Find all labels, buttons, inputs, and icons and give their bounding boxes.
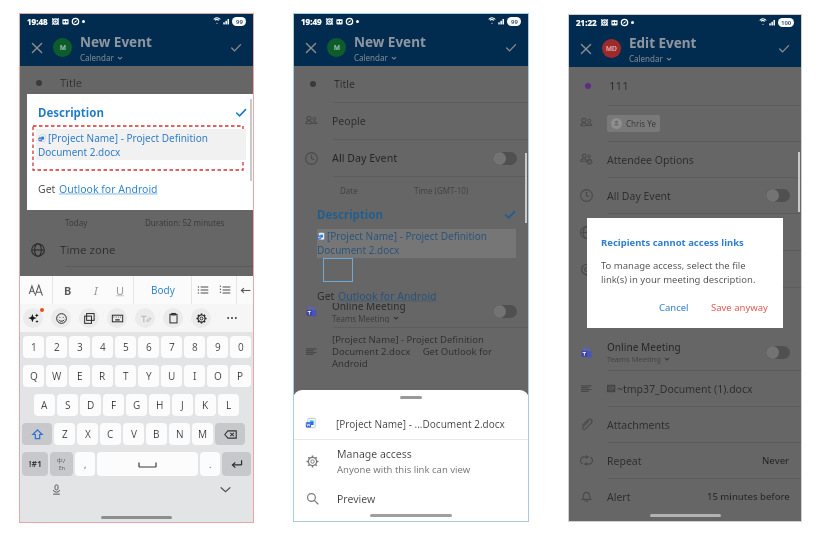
button[interactable]: Attachments [568, 407, 802, 442]
button[interactable]: Space [97, 452, 198, 476]
staticText: 4 [100, 340, 106, 354]
staticText: 111 [609, 78, 629, 94]
button[interactable]: Keyboard [107, 308, 127, 328]
button[interactable]: More [222, 308, 242, 328]
button[interactable]: I [83, 276, 108, 304]
button[interactable]: J [172, 394, 193, 416]
button[interactable]: Cancel [653, 297, 695, 318]
button[interactable]: . [200, 452, 220, 476]
staticText: 99 [236, 18, 243, 26]
button[interactable]: V [123, 423, 144, 445]
button[interactable]: 2 [46, 336, 67, 358]
staticText: 2 [54, 340, 60, 354]
button[interactable]: U [108, 276, 133, 304]
button[interactable]: U [161, 365, 182, 387]
button[interactable]: Z [54, 423, 75, 445]
staticText: M [334, 43, 340, 52]
button[interactable]: Close [26, 37, 48, 59]
staticText: Teams Meeting [332, 313, 390, 323]
button[interactable]: Close [575, 38, 597, 60]
staticText: L [226, 398, 232, 412]
button[interactable]: Shift [22, 423, 52, 445]
button[interactable]: Toggle [493, 305, 517, 318]
button[interactable]: , [75, 452, 95, 476]
button[interactable]: T [115, 365, 136, 387]
button[interactable]: Bulleted list [192, 276, 214, 304]
staticText: Manage access [337, 447, 412, 461]
button[interactable]: Toggle [493, 152, 517, 165]
button[interactable]: 1 [23, 336, 44, 358]
button[interactable]: L [218, 394, 239, 416]
button[interactable]: 8 [184, 336, 205, 358]
button[interactable] [568, 214, 802, 250]
button[interactable]: Q [23, 365, 44, 387]
button[interactable]: G [126, 394, 147, 416]
button[interactable]: M [192, 423, 213, 445]
button[interactable]: I [184, 365, 205, 387]
button[interactable]: O [207, 365, 228, 387]
button[interactable]: 0 [230, 336, 251, 358]
button[interactable]: Title [293, 66, 529, 102]
staticText: I [193, 369, 197, 383]
button[interactable]: [Project Name] - ...Document 2.docx [293, 408, 529, 439]
button[interactable]: 5 [115, 336, 136, 358]
button[interactable]: Save anyway [705, 297, 774, 318]
button[interactable]: All Day Event [568, 178, 802, 213]
button[interactable]: 6 [138, 336, 159, 358]
button[interactable]: S [57, 394, 78, 416]
button[interactable]: K [195, 394, 216, 416]
staticText: B [64, 283, 72, 298]
button[interactable]: Y [138, 365, 159, 387]
button[interactable]: 7 [161, 336, 182, 358]
button[interactable]: !#1 [22, 452, 48, 476]
button[interactable]: All Day Event [293, 140, 529, 176]
button[interactable]: R [92, 365, 113, 387]
button[interactable]: C [100, 423, 121, 445]
button[interactable]: B [146, 423, 167, 445]
button[interactable]: Enter [222, 452, 251, 476]
button[interactable]: 3 [69, 336, 90, 358]
button[interactable]: Font [19, 276, 52, 304]
button[interactable]: Handwriting [135, 308, 155, 328]
button[interactable] [568, 251, 802, 287]
button[interactable]: AI [23, 308, 43, 328]
button[interactable]: Voice input [51, 484, 62, 495]
button[interactable]: Alert [568, 479, 802, 514]
staticText: B [153, 427, 160, 441]
button[interactable]: Close [300, 37, 322, 59]
button[interactable]: Save [500, 37, 522, 59]
button[interactable]: 9 [207, 336, 228, 358]
button[interactable]: Settings [191, 308, 211, 328]
button[interactable]: F [103, 394, 124, 416]
button[interactable]: GIF [79, 308, 99, 328]
staticText: 5 [123, 340, 129, 354]
button[interactable]: A [34, 394, 55, 416]
button[interactable]: Repeat [568, 443, 802, 478]
button[interactable]: Toggle [766, 189, 790, 202]
button[interactable]: Clipboard [163, 308, 183, 328]
staticText: 19:48 [27, 16, 48, 27]
button[interactable]: Manage access [293, 440, 529, 483]
button[interactable]: W [46, 365, 67, 387]
button[interactable]: Preview [293, 483, 529, 514]
button[interactable]: Backspace [215, 423, 245, 445]
button[interactable]: H [149, 394, 170, 416]
button[interactable]: X [77, 423, 98, 445]
button[interactable]: Hide keyboard [220, 484, 231, 495]
button[interactable]: Save [773, 38, 795, 60]
button[interactable]: Numbered list [214, 276, 236, 304]
staticText: 9 [215, 340, 221, 354]
button[interactable]: Toggle [766, 346, 790, 359]
button[interactable]: D [80, 394, 101, 416]
button[interactable]: Save [225, 37, 247, 59]
button[interactable]: E [69, 365, 90, 387]
button[interactable]: 中/ [50, 452, 73, 476]
button[interactable]: P [230, 365, 251, 387]
button[interactable]: People [293, 103, 529, 139]
button[interactable]: N [169, 423, 190, 445]
button[interactable]: Attendee Options [568, 142, 802, 177]
button[interactable]: 4 [92, 336, 113, 358]
button[interactable]: Emoji [51, 308, 71, 328]
button[interactable]: B [53, 276, 83, 304]
button[interactable]: Body [134, 276, 191, 304]
